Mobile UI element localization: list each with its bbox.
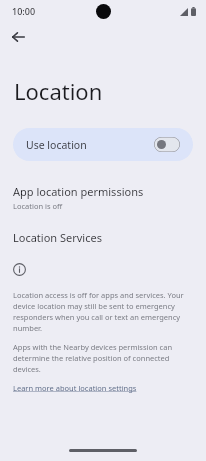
button[interactable]: Learn more about location settings [13,383,137,393]
button[interactable]: App location permissions [0,183,206,212]
staticText: Apps with the Nearby devices permission … [13,342,193,374]
staticText: Location [14,76,103,106]
staticText: Location Services [13,230,102,245]
staticText: Learn more about location settings [13,383,137,393]
staticText: Location is off [13,201,63,211]
staticText: App location permissions [13,184,144,199]
staticText: 10:00 [12,5,36,17]
button[interactable]: Back [5,24,31,50]
button[interactable]: Location Services [0,229,206,246]
staticText: Location access is off for apps and serv… [13,290,193,333]
staticText: Use location [26,138,87,152]
button[interactable]: Use location [13,128,193,161]
